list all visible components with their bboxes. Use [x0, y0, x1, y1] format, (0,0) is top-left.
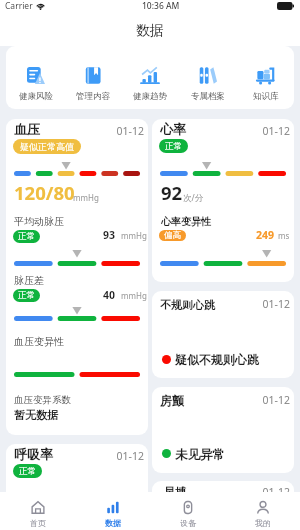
button[interactable]: 血压: [6, 119, 148, 435]
button[interactable]: 心率: [152, 119, 294, 282]
staticText: 92: [161, 180, 183, 205]
staticText: 40: [103, 288, 116, 302]
staticText: 正常: [165, 141, 182, 152]
staticText: 血压: [14, 121, 40, 137]
staticText: 数据: [105, 518, 121, 528]
staticText: 偏高: [164, 230, 181, 241]
staticText: 管理内容: [76, 91, 110, 102]
staticText: 01-12: [250, 124, 290, 138]
staticText: 疑似正常高值: [20, 141, 74, 152]
staticText: 血压变异性: [14, 335, 64, 348]
staticText: 我的: [255, 518, 271, 528]
staticText: 数据: [136, 22, 164, 40]
staticText: 心率: [160, 121, 186, 137]
staticText: 正常: [18, 290, 35, 301]
button[interactable]: 呼吸率: [6, 444, 148, 530]
staticText: 设备: [180, 518, 196, 528]
button[interactable]: 管理内容: [75, 46, 111, 102]
button[interactable]: 我的: [245, 492, 281, 528]
staticText: 房颤: [160, 393, 184, 408]
staticText: ms: [278, 230, 290, 241]
staticText: 01-12: [250, 297, 290, 311]
staticText: 疑似不规则心跳: [175, 352, 259, 367]
staticText: 01-12: [250, 393, 290, 407]
staticText: 平均动脉压: [14, 215, 64, 228]
staticText: mmHg: [121, 230, 147, 241]
button[interactable]: 专属档案: [190, 46, 226, 102]
button[interactable]: 数据: [95, 492, 131, 528]
staticText: 120/80: [14, 180, 75, 205]
staticText: Carrier: [5, 0, 33, 12]
staticText: 10:36 AM: [142, 0, 180, 12]
staticText: 首页: [30, 518, 46, 528]
button[interactable]: 不规则心跳: [152, 291, 294, 378]
staticText: 血压变异系数: [14, 394, 71, 406]
staticText: 呼吸率: [14, 446, 53, 462]
staticText: 正常: [18, 231, 35, 242]
button[interactable]: 知识库: [252, 46, 280, 102]
staticText: 专属档案: [191, 91, 225, 102]
staticText: 249: [256, 228, 275, 242]
staticText: 01-12: [250, 485, 290, 499]
button[interactable]: 首页: [20, 492, 56, 528]
button[interactable]: 健康风险: [18, 46, 54, 102]
staticText: 心率变异性: [161, 215, 211, 228]
staticText: 不规则心跳: [160, 298, 215, 312]
staticText: mmHg: [121, 290, 147, 301]
staticText: 未见异常: [175, 447, 225, 463]
button[interactable]: 早搏: [152, 481, 294, 530]
staticText: 93: [103, 228, 116, 242]
button[interactable]: 房颤: [152, 387, 294, 473]
staticText: 健康趋势: [133, 91, 167, 102]
staticText: 次/分: [183, 192, 204, 204]
button[interactable]: 设备: [170, 492, 206, 528]
staticText: 健康风险: [19, 91, 53, 102]
staticText: mmHg: [73, 192, 99, 203]
staticText: 01-12: [104, 124, 144, 138]
staticText: 正常: [19, 466, 36, 477]
staticText: 脉压差: [14, 274, 44, 287]
staticText: 暂无数据: [14, 408, 58, 422]
staticText: 早搏: [164, 485, 186, 499]
staticText: 01-12: [104, 449, 144, 463]
button[interactable]: 健康趋势: [132, 46, 168, 102]
staticText: 知识库: [253, 91, 279, 102]
